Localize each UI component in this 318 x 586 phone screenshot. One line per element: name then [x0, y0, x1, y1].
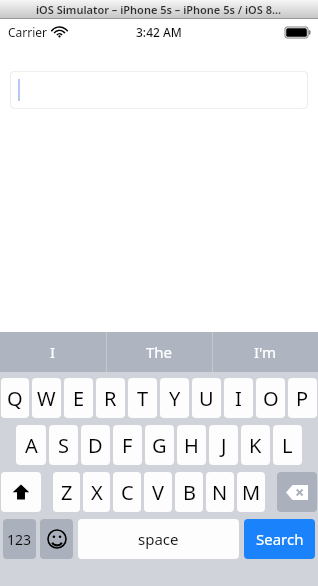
button[interactable]: 123 [3, 519, 36, 559]
staticText: G [152, 432, 167, 459]
button[interactable]: Y [160, 378, 189, 418]
staticText: I'm [254, 342, 277, 362]
button[interactable]: J [209, 425, 238, 465]
button[interactable]: X [83, 472, 110, 512]
button[interactable]: The [107, 332, 212, 372]
staticText: T [137, 385, 149, 412]
staticText: Z [61, 479, 73, 506]
staticText: Y [169, 385, 181, 412]
button[interactable]: A [16, 425, 46, 465]
staticText: F [122, 432, 133, 459]
button[interactable]: E [64, 378, 93, 418]
staticText: Carrier [8, 24, 48, 40]
button[interactable]: Search [244, 519, 315, 559]
staticText: A [25, 432, 38, 459]
staticText: I [235, 385, 242, 412]
button[interactable]: W [32, 378, 61, 418]
staticText: 123 [7, 530, 32, 549]
staticText: E [73, 385, 85, 412]
button[interactable] [10, 71, 308, 109]
staticText: W [37, 385, 56, 412]
button[interactable]: M [237, 472, 265, 512]
staticText: iOS Simulator – iPhone 5s – iPhone 5s / … [36, 2, 282, 17]
staticText: S [58, 432, 69, 459]
button[interactable]: Q [1, 378, 29, 418]
staticText: C [121, 479, 134, 506]
staticText: P [296, 385, 309, 412]
staticText: N [212, 479, 228, 506]
button[interactable]: O [256, 378, 285, 418]
button[interactable]: Shift [1, 472, 41, 512]
staticText: K [249, 432, 262, 459]
staticText: 3:42 AM [136, 24, 182, 40]
staticText: U [199, 385, 214, 412]
staticText: H [184, 432, 199, 459]
button[interactable]: I [0, 332, 106, 372]
button[interactable]: R [96, 378, 125, 418]
button[interactable]: space [78, 519, 239, 559]
button[interactable]: V [144, 472, 172, 512]
button[interactable]: P [288, 378, 317, 418]
staticText: J [221, 432, 227, 459]
button[interactable]: U [192, 378, 221, 418]
button[interactable]: I'm [213, 332, 318, 372]
button[interactable]: C [113, 472, 141, 512]
button[interactable]: L [273, 425, 302, 465]
button[interactable]: I [224, 378, 253, 418]
button[interactable]: T [128, 378, 157, 418]
button[interactable]: S [49, 425, 78, 465]
staticText: O [263, 385, 279, 412]
button[interactable]: N [206, 472, 234, 512]
staticText: space [138, 529, 179, 549]
staticText: L [282, 432, 293, 459]
staticText: D [88, 432, 103, 459]
staticText: B [183, 479, 196, 506]
staticText: X [91, 479, 103, 506]
staticText: V [152, 479, 164, 506]
staticText: Q [7, 385, 23, 412]
staticText: R [104, 385, 117, 412]
button[interactable]: G [145, 425, 174, 465]
button[interactable]: Backspace [277, 472, 317, 512]
button[interactable]: Emoji [40, 519, 73, 559]
button[interactable]: B [175, 472, 203, 512]
button[interactable]: H [177, 425, 206, 465]
staticText: I [50, 342, 56, 362]
button[interactable]: Z [53, 472, 80, 512]
staticText: M [242, 479, 261, 506]
staticText: The [146, 342, 173, 362]
button[interactable]: K [241, 425, 270, 465]
button[interactable]: F [113, 425, 142, 465]
button[interactable]: D [81, 425, 110, 465]
staticText: Search [256, 529, 304, 549]
